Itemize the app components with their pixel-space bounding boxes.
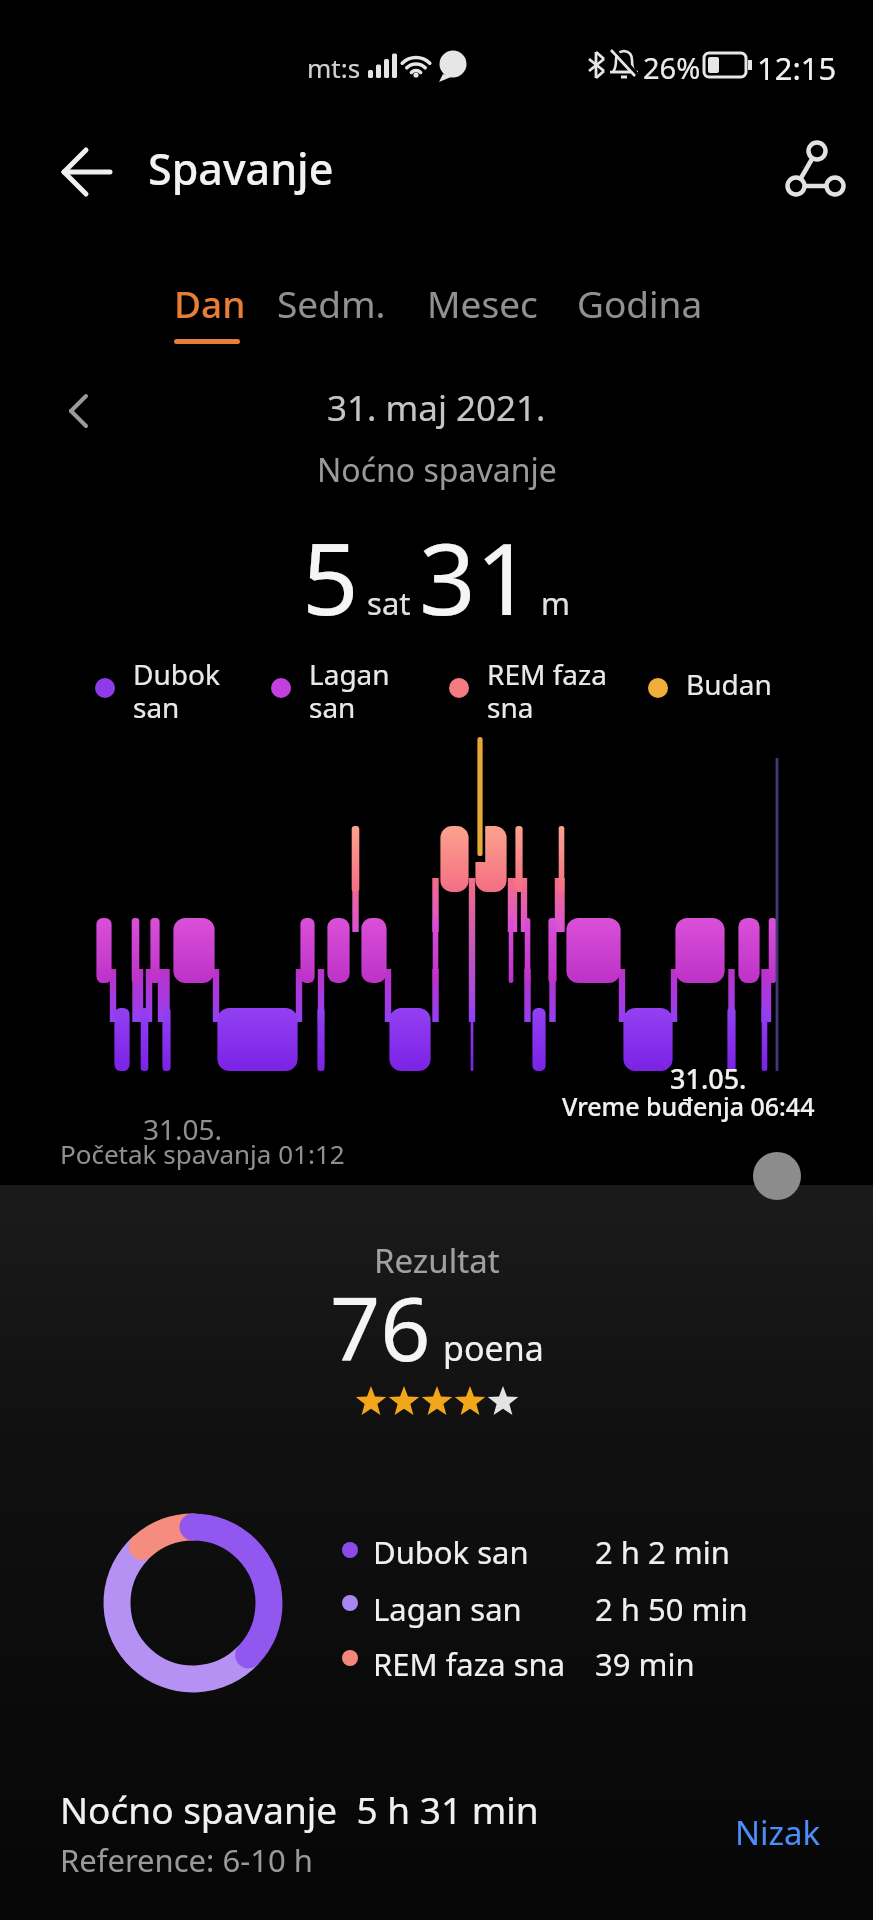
- staticText: san: [309, 688, 356, 726]
- staticText: Nizak: [735, 1810, 821, 1855]
- staticText: Početak spavanja 01:12: [60, 1136, 345, 1171]
- staticText: Lagan san: [373, 1588, 522, 1630]
- staticText: Budan: [686, 665, 772, 703]
- staticText: Vreme buđenja 06:44: [562, 1089, 815, 1123]
- staticText: m: [533, 582, 571, 624]
- staticText: 26%: [643, 48, 701, 87]
- staticText: sna: [487, 688, 534, 726]
- staticText: 31. maj 2021.: [327, 384, 546, 432]
- staticText: Noćno spavanje 5 h 31 min: [60, 1784, 539, 1834]
- staticText: 12:15: [757, 47, 837, 89]
- staticText: Dubok san: [373, 1531, 529, 1573]
- staticText: Dan: [174, 278, 246, 328]
- staticText: Noćno spavanje: [317, 448, 557, 492]
- staticText: Mesec: [427, 278, 538, 328]
- staticText: Rezultat: [374, 1238, 500, 1283]
- staticText: mt:s: [307, 50, 361, 85]
- staticText: Lagan: [309, 655, 390, 693]
- staticText: Godina: [577, 278, 703, 328]
- staticText: 31: [419, 509, 533, 644]
- staticText: 76: [330, 1267, 431, 1387]
- staticText: 2 h 2 min: [595, 1531, 730, 1573]
- staticText: 2 h 50 min: [595, 1588, 748, 1630]
- staticText: Sedm.: [277, 278, 386, 328]
- staticText: REM faza: [487, 655, 607, 693]
- staticText: REM faza sna: [373, 1643, 566, 1685]
- staticText: 31.05.: [143, 1110, 223, 1148]
- staticText: poena: [443, 1325, 544, 1371]
- staticText: san: [133, 688, 180, 726]
- staticText: sat: [359, 582, 419, 624]
- staticText: Dubok: [133, 655, 220, 693]
- staticText: 5: [302, 509, 359, 644]
- staticText: 31.05.: [670, 1060, 747, 1097]
- staticText: Reference: 6-10 h: [60, 1839, 313, 1881]
- staticText: 39 min: [595, 1643, 695, 1685]
- staticText: Spavanje: [148, 139, 334, 198]
